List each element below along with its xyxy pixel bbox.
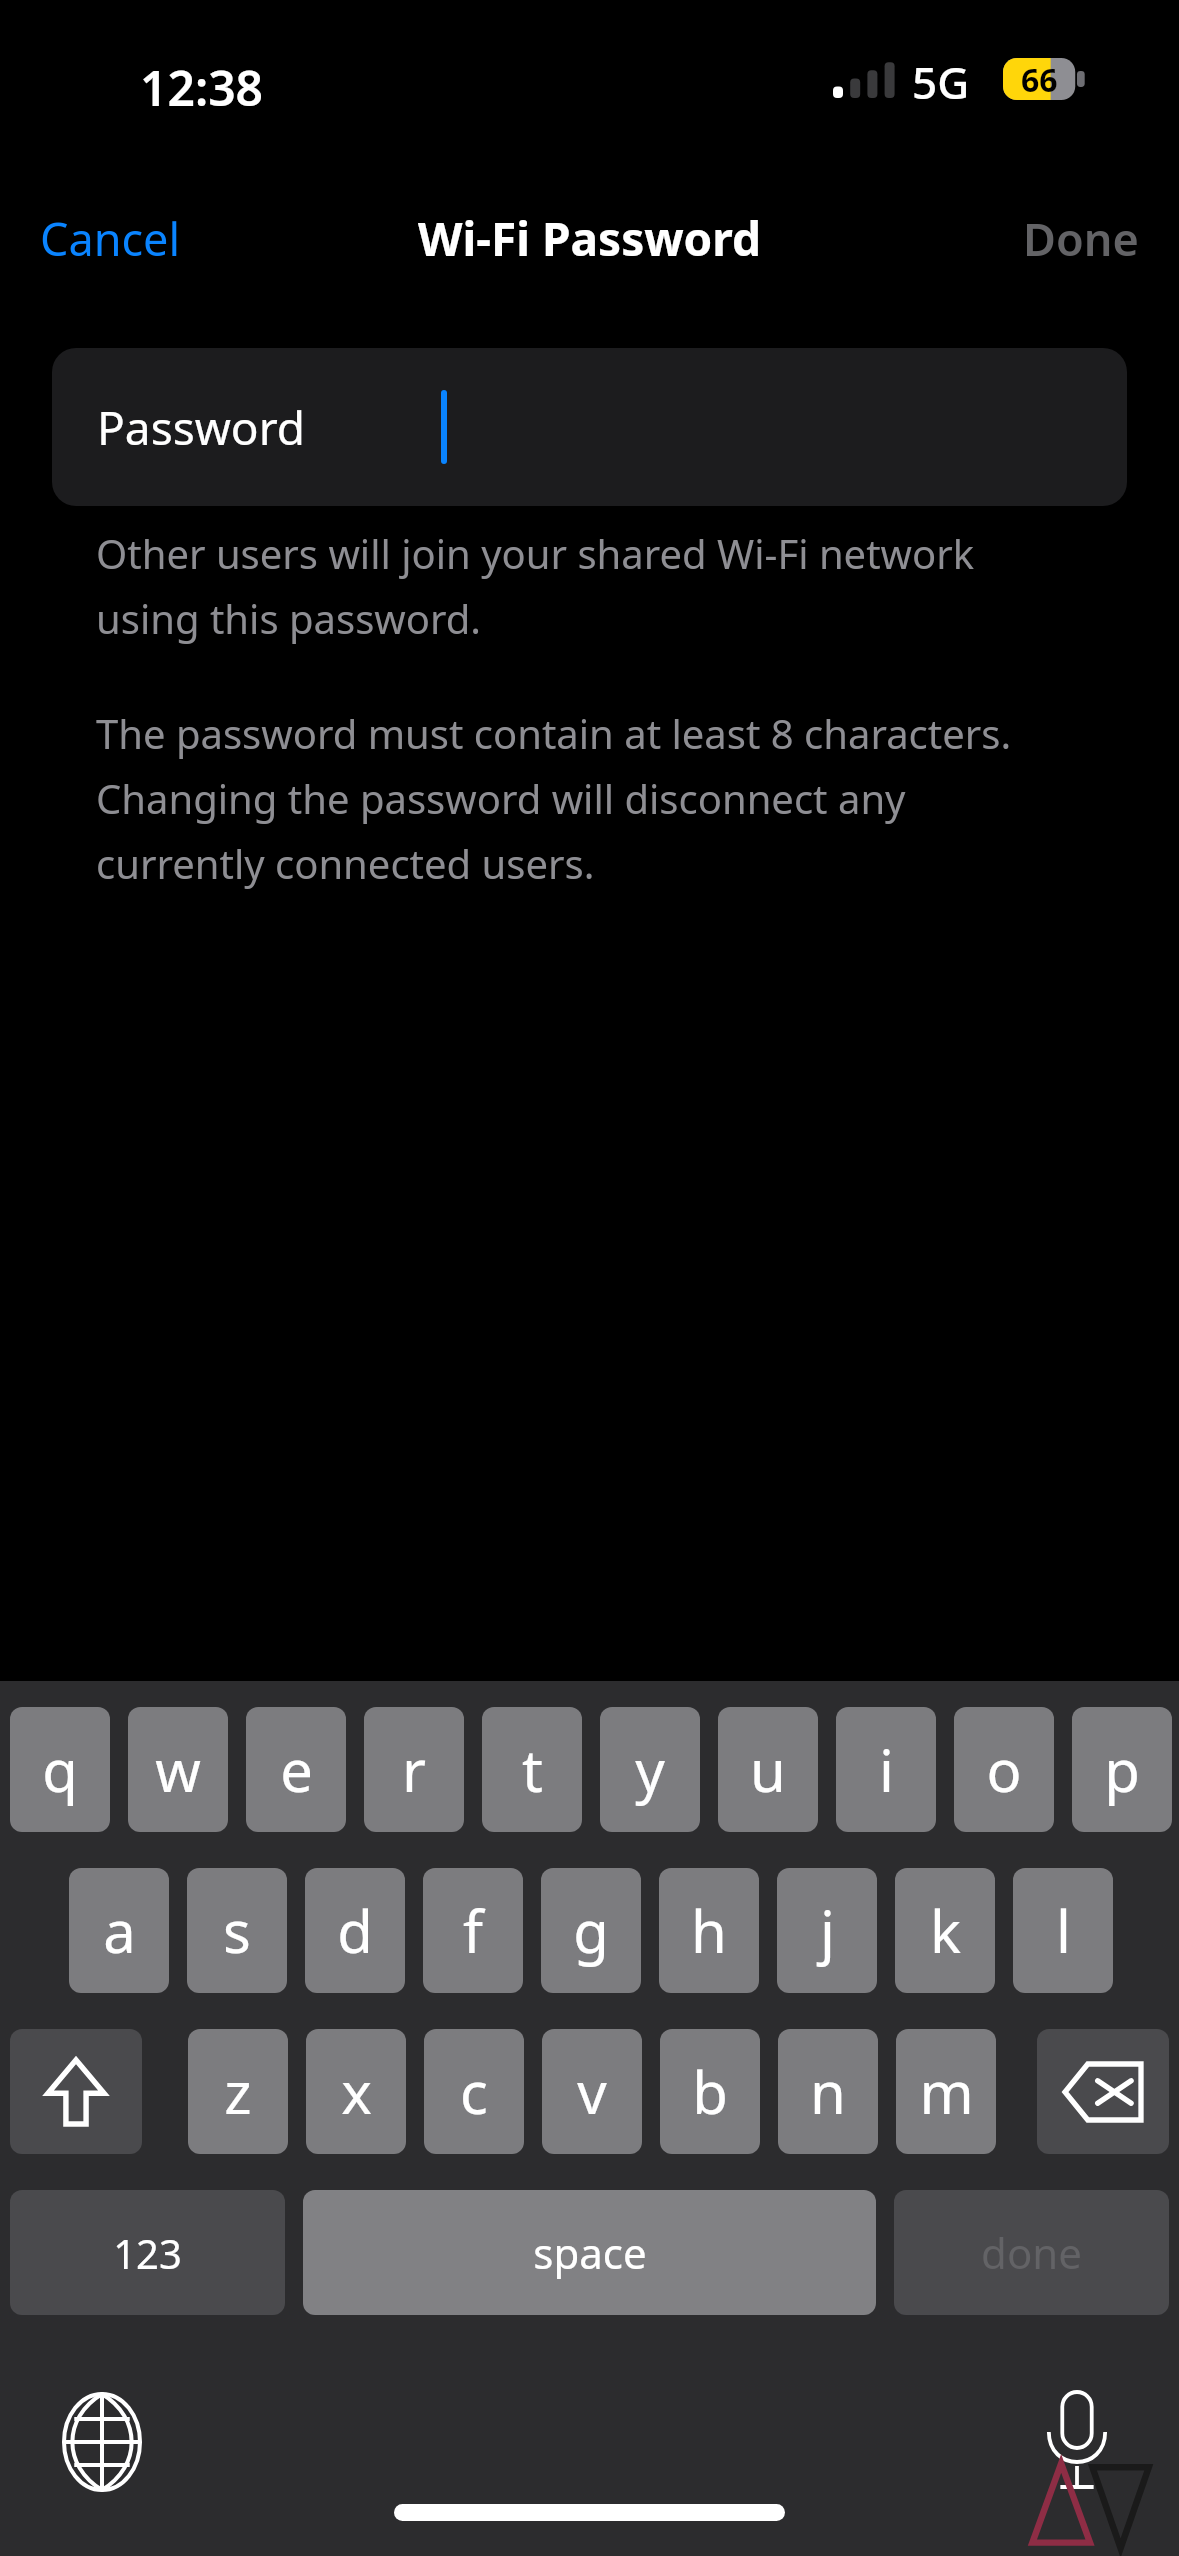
button[interactable]: v bbox=[542, 2029, 642, 2154]
button[interactable]: m bbox=[896, 2029, 996, 2154]
staticText: z bbox=[224, 2052, 252, 2131]
staticText: g bbox=[573, 1891, 609, 1970]
button[interactable]: f bbox=[423, 1868, 523, 1993]
staticText: o bbox=[986, 1730, 1022, 1809]
staticText: n bbox=[810, 2052, 846, 2131]
button[interactable]: t bbox=[482, 1707, 582, 1832]
button[interactable]: g bbox=[541, 1868, 641, 1993]
button[interactable]: done bbox=[894, 2190, 1169, 2315]
staticText: i bbox=[879, 1730, 894, 1809]
button[interactable]: h bbox=[659, 1868, 759, 1993]
staticText: b bbox=[692, 2052, 728, 2131]
staticText: 123 bbox=[113, 2226, 182, 2280]
staticText: c bbox=[460, 2052, 488, 2131]
staticText: h bbox=[691, 1891, 727, 1970]
button[interactable]: Password bbox=[52, 348, 1127, 506]
staticText: w bbox=[155, 1730, 201, 1809]
staticText: j bbox=[820, 1891, 835, 1970]
staticText: 66 bbox=[1021, 58, 1058, 100]
button[interactable]: Dictation bbox=[1017, 2382, 1137, 2502]
staticText: Other users will join your shared Wi-Fi … bbox=[96, 526, 1076, 646]
staticText: The password must contain at least 8 cha… bbox=[96, 706, 1076, 891]
button[interactable]: e bbox=[246, 1707, 346, 1832]
button[interactable]: Shift bbox=[10, 2029, 142, 2154]
staticText: v bbox=[577, 2052, 607, 2131]
button[interactable]: y bbox=[600, 1707, 700, 1832]
button[interactable]: s bbox=[187, 1868, 287, 1993]
staticText: Cancel bbox=[40, 208, 181, 269]
staticText: m bbox=[919, 2052, 974, 2131]
staticText: u bbox=[750, 1730, 786, 1809]
button[interactable]: 123 bbox=[10, 2190, 285, 2315]
staticText: a bbox=[103, 1891, 136, 1970]
staticText: e bbox=[280, 1730, 313, 1809]
staticText: Wi-Fi Password bbox=[418, 207, 762, 270]
button[interactable]: j bbox=[777, 1868, 877, 1993]
button[interactable]: a bbox=[69, 1868, 169, 1993]
button[interactable]: x bbox=[306, 2029, 406, 2154]
button[interactable]: w bbox=[128, 1707, 228, 1832]
staticText: d bbox=[337, 1891, 373, 1970]
staticText: x bbox=[341, 2052, 372, 2131]
button[interactable]: d bbox=[305, 1868, 405, 1993]
staticText: done bbox=[981, 2224, 1082, 2281]
button[interactable]: Done bbox=[1005, 194, 1157, 283]
staticText: r bbox=[402, 1730, 426, 1809]
button[interactable]: space bbox=[303, 2190, 876, 2315]
staticText: 5G bbox=[912, 52, 970, 112]
staticText: 12:38 bbox=[140, 55, 264, 120]
staticText: f bbox=[463, 1891, 483, 1970]
button[interactable]: c bbox=[424, 2029, 524, 2154]
staticText: y bbox=[635, 1730, 665, 1809]
button[interactable]: q bbox=[10, 1707, 110, 1832]
button[interactable]: Next keyboard bbox=[42, 2382, 162, 2502]
staticText: Password bbox=[97, 396, 306, 459]
button[interactable]: Backspace bbox=[1037, 2029, 1169, 2154]
staticText: l bbox=[1056, 1891, 1071, 1970]
button[interactable]: u bbox=[718, 1707, 818, 1832]
button[interactable]: n bbox=[778, 2029, 878, 2154]
button[interactable]: z bbox=[188, 2029, 288, 2154]
staticText: s bbox=[223, 1891, 251, 1970]
button[interactable]: r bbox=[364, 1707, 464, 1832]
staticText: Done bbox=[1023, 208, 1139, 269]
button[interactable]: i bbox=[836, 1707, 936, 1832]
staticText: t bbox=[522, 1730, 543, 1809]
button[interactable]: l bbox=[1013, 1868, 1113, 1993]
staticText: q bbox=[42, 1730, 78, 1809]
button[interactable]: Cancel bbox=[22, 194, 199, 283]
button[interactable]: k bbox=[895, 1868, 995, 1993]
button[interactable]: b bbox=[660, 2029, 760, 2154]
button[interactable]: p bbox=[1072, 1707, 1172, 1832]
button[interactable]: o bbox=[954, 1707, 1054, 1832]
staticText: k bbox=[930, 1891, 961, 1970]
staticText: p bbox=[1104, 1730, 1140, 1809]
staticText: space bbox=[533, 2224, 647, 2281]
